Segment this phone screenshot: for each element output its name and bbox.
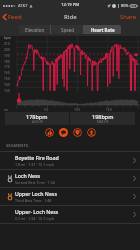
staticText: 10.0 [74,108,80,112]
button[interactable]: Elevation [19,25,50,34]
staticText: 130 [4,89,10,93]
staticText: mi [4,108,8,112]
staticText: 1.8 mi · 7:37 · 15.1 mph [15,162,54,167]
staticText: 200 [4,48,10,52]
staticText: Loch Ness [15,172,41,179]
staticText: AT&T [18,3,28,8]
button[interactable]: Loch Ness [0,170,140,187]
button[interactable]: Share ride [87,128,96,137]
staticText: 12:19 PM [61,2,80,8]
button[interactable]: 198bpm [70,112,135,125]
staticText: 150 [4,77,10,81]
staticText: 190 [4,54,10,58]
staticText: Feed [8,13,22,21]
button[interactable]: Comment [59,128,68,137]
staticText: Heart Rate [91,27,115,33]
staticText: 15.0 [106,108,112,112]
staticText: 80% [121,3,129,8]
staticText: 0.2 mi · 1:24 · 10.7 mph [15,216,54,221]
staticText: Third Best Time · 1:48 [15,198,52,203]
button[interactable]: Kudos [45,128,54,137]
button[interactable]: Feed [0,11,26,23]
staticText: Speed [61,27,74,33]
staticText: 160 [4,71,10,75]
staticText: Upper· Loch Ness [15,208,59,215]
staticText: Boyette Fire Road [15,154,59,161]
staticText: 140 [4,83,10,87]
staticText: 198bpm [92,113,114,120]
button[interactable]: Boyette Fire Road [0,152,140,169]
staticText: 180 [4,60,10,64]
staticText: Second Best Time · 1:34 [15,180,55,185]
button[interactable]: Upper Loch Ness [0,188,140,205]
staticText: SEGMENTS [6,143,29,149]
button[interactable]: 178bpm [5,112,69,125]
staticText: Upper Loch Ness [15,190,57,197]
staticText: 210 [4,42,10,46]
button[interactable]: Flag [73,128,82,137]
staticText: Elevation [25,27,45,33]
staticText: MAX HR [97,120,109,124]
staticText: AVG HR [32,120,43,124]
button[interactable]: Heart Rate [84,25,121,34]
staticText: 170 [4,65,10,69]
staticText: 5.0 [44,108,49,112]
button[interactable]: Upper· Loch Ness [0,206,140,223]
button[interactable]: Speed [51,25,83,34]
staticText: 178bpm [26,113,48,120]
button[interactable]: Share [116,11,140,23]
staticText: bpm [4,36,11,40]
staticText: Ride [64,13,77,21]
